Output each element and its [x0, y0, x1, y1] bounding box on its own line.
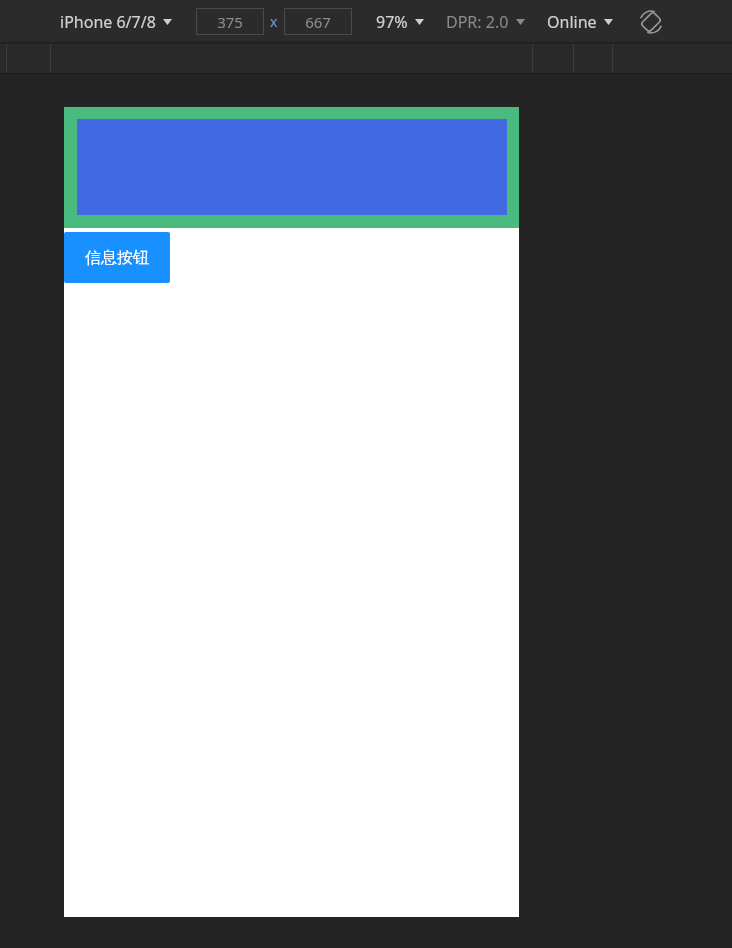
button[interactable]: DPR: 2.0 — [444, 7, 527, 37]
staticText: x — [270, 12, 278, 31]
staticText: 667 — [305, 12, 331, 32]
staticText: 信息按钮 — [85, 248, 149, 268]
button[interactable]: 667 — [284, 8, 352, 35]
button[interactable]: 375 — [196, 8, 264, 35]
button[interactable]: Rotate device — [635, 6, 667, 38]
staticText: iPhone 6/7/8 — [60, 11, 156, 33]
button[interactable]: 97% — [374, 7, 426, 37]
staticText: Online — [547, 11, 597, 33]
button[interactable] — [64, 107, 519, 228]
button[interactable]: iPhone 6/7/8 — [58, 7, 174, 37]
staticText: 97% — [376, 11, 408, 33]
button[interactable]: 信息按钮 — [64, 232, 170, 283]
staticText: 375 — [217, 12, 243, 32]
button[interactable]: Online — [545, 7, 615, 37]
staticText: DPR: 2.0 — [446, 11, 509, 33]
